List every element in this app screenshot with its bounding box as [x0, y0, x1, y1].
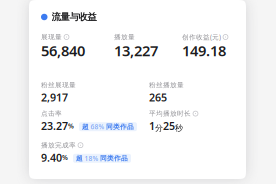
staticText: 23.27 [41, 119, 68, 133]
staticText: 点击率 [41, 109, 62, 118]
staticText: 超 [76, 154, 83, 162]
staticText: 超 [82, 123, 89, 131]
staticText: 流量与收益 [51, 11, 96, 23]
button[interactable]: 创作收益(元) [182, 33, 234, 57]
staticText: 2,917 [41, 90, 68, 104]
button[interactable]: 超 [73, 154, 131, 163]
staticText: 创作收益(元) [182, 33, 221, 41]
staticText: 播放完成率 [41, 141, 76, 149]
button[interactable]: 展现量 [41, 33, 114, 57]
staticText: 展现量 [41, 33, 62, 41]
staticText: 粉丝展现量 [41, 81, 76, 89]
staticText: 13,227 [114, 41, 158, 60]
staticText: 68% [90, 122, 104, 131]
staticText: 25 [163, 119, 175, 133]
staticText: % [62, 153, 68, 162]
staticText: 18% [84, 154, 98, 163]
button[interactable]: 平均播放时长 [149, 110, 234, 131]
staticText: 1 [149, 119, 155, 133]
button[interactable]: 播放完成率 [41, 141, 234, 163]
staticText: 分 [155, 123, 163, 133]
button[interactable]: 播放量 [114, 33, 182, 57]
staticText: 同类作品 [106, 123, 134, 131]
staticText: 149.18 [182, 41, 226, 60]
staticText: 56,840 [41, 41, 85, 60]
staticText: 同类作品 [100, 154, 128, 162]
staticText: 秒 [175, 123, 183, 133]
button[interactable]: 超 [79, 122, 137, 131]
button[interactable]: 点击率 [41, 110, 149, 131]
staticText: 9.40 [41, 150, 62, 165]
button[interactable]: 粉丝播放量 [149, 81, 234, 103]
staticText: % [68, 121, 74, 130]
button[interactable]: 粉丝展现量 [41, 81, 149, 103]
staticText: 265 [149, 90, 167, 104]
staticText: 播放量 [114, 33, 135, 41]
staticText: 平均播放时长 [149, 109, 191, 118]
staticText: 粉丝播放量 [149, 81, 184, 89]
button[interactable]: 流量与收益 [41, 0, 96, 22]
